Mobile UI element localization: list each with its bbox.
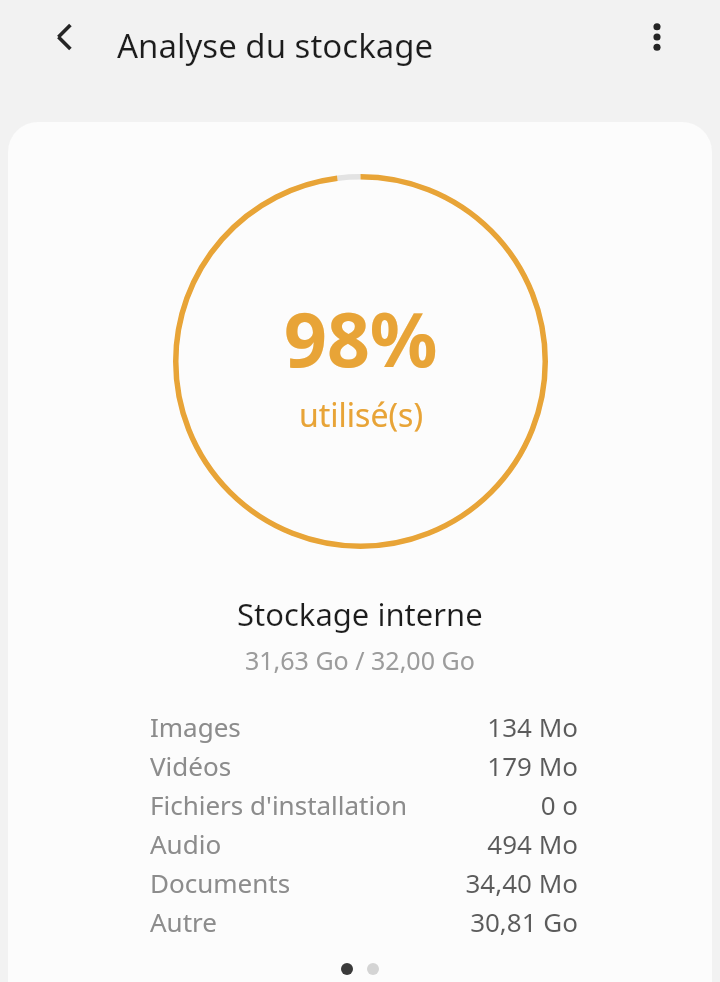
staticText: 0 o [540,787,578,822]
button[interactable]: Page 1 [341,963,353,975]
staticText: Documents [150,865,465,900]
staticText: Images [150,709,487,744]
staticText: 179 Mo [487,748,578,783]
staticText: Audio [150,826,487,861]
staticText: Analyse du stockage [117,23,434,68]
staticText: 34,40 Mo [465,865,578,900]
button[interactable]: Fichiers d'installation [150,785,578,824]
button[interactable]: Audio [150,824,578,863]
button[interactable]: Autre [150,902,578,941]
button[interactable]: Images [150,707,578,746]
button[interactable]: Vidéos [150,746,578,785]
button[interactable]: Documents [150,863,578,902]
staticText: Fichiers d'installation [150,787,540,822]
staticText: 494 Mo [487,826,578,861]
staticText: 31,63 Go / 32,00 Go [245,643,475,677]
staticText: Vidéos [150,748,487,783]
button[interactable]: Back [38,10,92,64]
button[interactable]: More options [630,10,684,64]
staticText: 134 Mo [487,709,578,744]
staticText: utilisé(s) [299,393,424,437]
staticText: 98% [284,287,438,389]
button[interactable]: Page 2 [367,963,379,975]
staticText: Stockage interne [237,593,483,635]
staticText: Autre [150,904,470,939]
staticText: 30,81 Go [470,904,578,939]
